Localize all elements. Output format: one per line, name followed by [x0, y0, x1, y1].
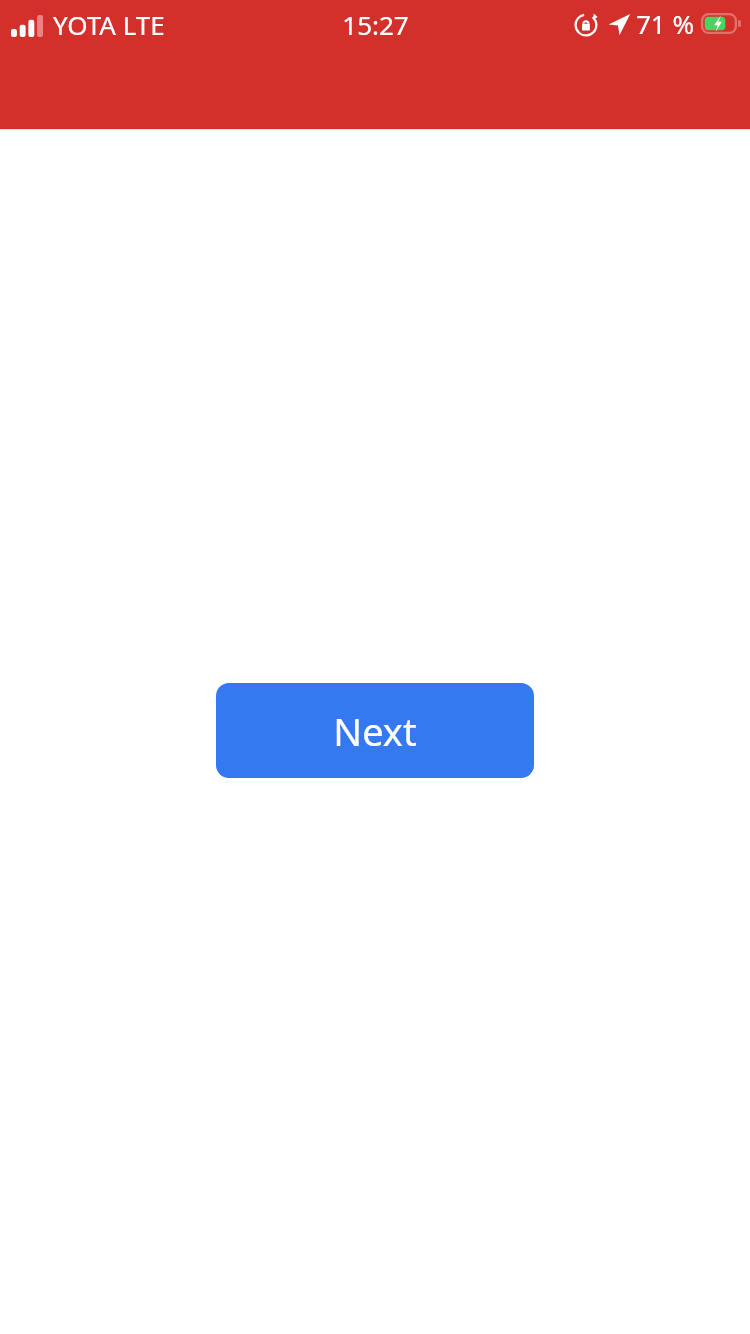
button[interactable]: Next [216, 683, 534, 778]
staticText: Next [333, 705, 417, 757]
staticText: YOTA LTE [53, 7, 165, 42]
staticText: 15:27 [342, 7, 409, 42]
staticText: 71 % [636, 6, 695, 41]
